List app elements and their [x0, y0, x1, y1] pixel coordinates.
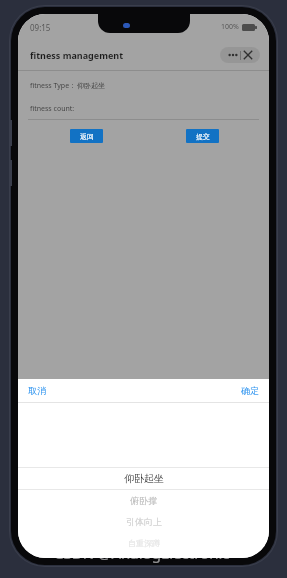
- button[interactable]: 提交: [186, 129, 219, 143]
- button[interactable]: 确定: [241, 385, 269, 396]
- staticText: fitness count:: [30, 104, 75, 114]
- staticText: 自重深蹲: [128, 538, 160, 548]
- button[interactable]: 自重深蹲: [18, 532, 269, 553]
- staticText: 俯卧撑: [130, 495, 157, 506]
- staticText: CSDN @AnalogElectronic: [54, 543, 230, 563]
- button[interactable]: 仰卧起坐: [18, 468, 269, 489]
- button[interactable]: 引体向上: [18, 511, 269, 532]
- staticText: 返回: [80, 132, 94, 141]
- staticText: 09:15: [30, 22, 51, 33]
- staticText: 100%: [221, 22, 239, 32]
- staticText: 仰卧起坐: [77, 81, 105, 90]
- button[interactable]: 返回: [70, 129, 103, 143]
- staticText: 引体向上: [126, 516, 162, 527]
- staticText: fitness Type：: [30, 81, 77, 91]
- button[interactable]: More and close: [220, 47, 260, 63]
- button[interactable]: 俯卧撑: [18, 490, 269, 511]
- staticText: 提交: [196, 132, 210, 141]
- staticText: fitness management: [30, 49, 124, 61]
- button[interactable]: 取消: [18, 385, 46, 396]
- staticText: 仰卧起坐: [124, 472, 164, 485]
